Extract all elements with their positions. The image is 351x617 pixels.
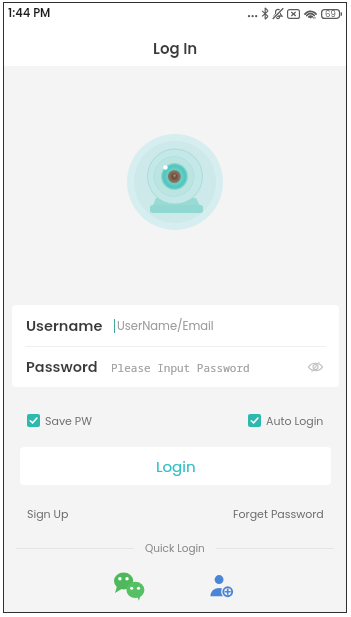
button[interactable]: Sign Up	[27, 506, 69, 521]
staticText: Password	[26, 357, 98, 377]
staticText: Forget Password	[233, 506, 324, 521]
staticText: Login	[156, 456, 196, 477]
staticText: Auto Login	[266, 413, 324, 428]
staticText: Save PW	[45, 413, 92, 428]
button[interactable]: Forget Password	[233, 506, 324, 521]
button[interactable]: Password	[12, 347, 339, 387]
button[interactable]: Username	[12, 305, 339, 346]
staticText: 69	[325, 8, 336, 20]
button[interactable]: Auto Login	[248, 413, 324, 428]
button[interactable]: Save PW	[27, 413, 92, 428]
button[interactable]: Login	[20, 447, 331, 485]
staticText: Username	[26, 316, 103, 336]
button[interactable]: WeChat login	[112, 569, 146, 603]
button[interactable]: Show password	[304, 356, 326, 378]
staticText: Please Input Password	[111, 360, 250, 375]
staticText: Log In	[153, 38, 198, 59]
staticText: Quick Login	[145, 541, 205, 556]
button[interactable]: Add account login	[204, 569, 238, 603]
staticText: Sign Up	[27, 506, 69, 521]
staticText: 1:44 PM	[8, 5, 51, 21]
staticText: UserName/Email	[117, 318, 214, 334]
